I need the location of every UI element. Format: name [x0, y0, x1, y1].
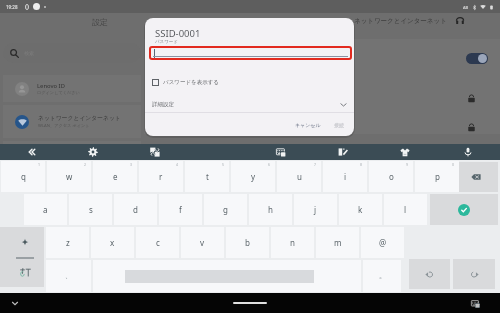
- button[interactable]: h: [249, 194, 292, 225]
- button[interactable]: Space: [93, 260, 361, 292]
- button[interactable]: 0: [415, 161, 459, 192]
- staticText: u: [297, 171, 302, 182]
- button[interactable]: Enter: [430, 194, 498, 225]
- button[interactable]: Cursor left: [409, 259, 450, 289]
- staticText: 1: [38, 162, 41, 167]
- button[interactable]: [149, 46, 352, 60]
- staticText: s: [89, 204, 93, 215]
- button[interactable]: d: [114, 194, 157, 225]
- staticText: c: [156, 237, 160, 248]
- staticText: k: [358, 204, 363, 215]
- staticText: e: [113, 171, 118, 182]
- button[interactable]: g: [204, 194, 247, 225]
- button[interactable]: b: [226, 227, 269, 258]
- button[interactable]: x: [91, 227, 134, 258]
- button[interactable]: m: [316, 227, 359, 258]
- button[interactable]: 接続: [331, 120, 347, 130]
- button[interactable]: Keyboard layout: [267, 144, 295, 160]
- staticText: 0: [452, 162, 455, 167]
- button[interactable]: Theme: [391, 144, 419, 160]
- staticText: y: [251, 171, 256, 182]
- staticText: b: [245, 237, 250, 248]
- button[interactable]: 9: [369, 161, 413, 192]
- staticText: 6: [268, 162, 271, 167]
- button[interactable]: 6: [231, 161, 275, 192]
- staticText: 19:28: [6, 4, 18, 10]
- button[interactable]: c: [136, 227, 179, 258]
- staticText: 4: [176, 162, 179, 167]
- button[interactable]: a: [24, 194, 67, 225]
- button[interactable]: Backspace: [454, 162, 498, 192]
- staticText: ログインしてください: [37, 90, 80, 95]
- staticText: 3: [130, 162, 133, 167]
- button[interactable]: Shift: [0, 227, 44, 257]
- staticText: f: [179, 204, 182, 215]
- button[interactable]: Hide keyboard: [8, 296, 22, 310]
- button[interactable]: l: [384, 194, 427, 225]
- staticText: m: [334, 237, 342, 248]
- button[interactable]: Lenovo ID: [3, 75, 141, 102]
- button[interactable]: Cursor right: [453, 259, 495, 289]
- staticText: 9: [406, 162, 409, 167]
- staticText: j: [314, 204, 317, 215]
- staticText: r: [159, 171, 163, 182]
- staticText: z: [66, 237, 70, 248]
- staticText: Lenovo ID: [37, 82, 65, 90]
- staticText: パスワード: [155, 39, 178, 45]
- button[interactable]: v: [181, 227, 224, 258]
- staticText: n: [290, 237, 295, 248]
- button[interactable]: 8: [323, 161, 367, 192]
- button[interactable]: パスワードを表示する: [152, 74, 354, 90]
- staticText: WLAN、アクセス ポイント: [38, 123, 90, 129]
- staticText: d: [133, 204, 138, 215]
- button[interactable]: Collapse toolbar: [17, 144, 45, 160]
- button[interactable]: 検索: [3, 43, 141, 63]
- staticText: ネットワークとインターネット: [38, 114, 121, 121]
- button[interactable]: f: [159, 194, 202, 225]
- staticText: キャンセル: [295, 122, 321, 128]
- staticText: h: [268, 204, 273, 215]
- button[interactable]: Help: [455, 16, 465, 26]
- button[interactable]: Conversion: [141, 144, 169, 160]
- staticText: o: [389, 171, 394, 182]
- staticText: v: [200, 237, 205, 248]
- button[interactable]: @: [361, 227, 404, 258]
- staticText: 、: [65, 271, 72, 280]
- staticText: x: [110, 237, 115, 248]
- staticText: g: [223, 204, 228, 215]
- staticText: SSID-0001: [155, 27, 201, 40]
- button[interactable]: 2: [47, 161, 91, 192]
- staticText: q: [21, 171, 26, 182]
- staticText: 5: [222, 162, 225, 167]
- button[interactable]: n: [271, 227, 314, 258]
- staticText: 設定: [92, 17, 108, 27]
- button[interactable]: z: [46, 227, 89, 258]
- staticText: 検索: [24, 50, 34, 56]
- staticText: パスワードを表示する: [163, 79, 219, 86]
- staticText: p: [435, 171, 440, 182]
- button[interactable]: 4: [139, 161, 183, 192]
- button[interactable]: s: [69, 194, 112, 225]
- button[interactable]: 詳細設定: [152, 96, 347, 112]
- button[interactable]: Switch language: [0, 257, 44, 287]
- button[interactable]: k: [339, 194, 382, 225]
- staticText: AB: [463, 5, 469, 10]
- button[interactable]: キャンセル: [292, 120, 324, 130]
- button[interactable]: j: [294, 194, 337, 225]
- button[interactable]: 3: [93, 161, 137, 192]
- button[interactable]: Edit notes: [329, 144, 357, 160]
- staticText: l: [404, 204, 407, 215]
- button[interactable]: ネットワークとインターネット: [3, 105, 141, 138]
- staticText: 詳細設定: [152, 101, 174, 108]
- button[interactable]: 5: [185, 161, 229, 192]
- button[interactable]: Settings: [79, 144, 107, 160]
- staticText: 8: [360, 162, 363, 167]
- button[interactable]: 1: [1, 161, 45, 192]
- button[interactable]: Wi-Fi toggle: [466, 53, 488, 64]
- button[interactable]: Switch keyboard: [468, 296, 482, 310]
- button[interactable]: 7: [277, 161, 321, 192]
- staticText: 2: [84, 162, 87, 167]
- button[interactable]: Voice input: [454, 144, 482, 160]
